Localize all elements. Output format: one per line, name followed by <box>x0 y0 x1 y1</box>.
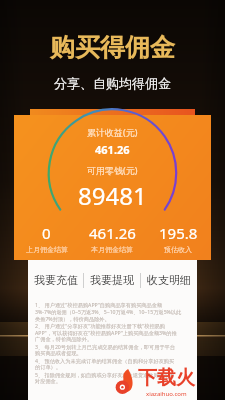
staticText: 461.26 <box>95 142 130 157</box>
staticText: 收支明细 <box>147 273 191 287</box>
staticText: 4、 预估收入为未完成订单的结算佣金（自购和分享好友购买 <box>35 357 175 364</box>
staticText: 购买得佣金 <box>50 32 175 63</box>
staticText: 购买商品或者提现。 <box>35 350 82 357</box>
staticText: 预估收入 <box>164 245 192 254</box>
staticText: 可用零钱(元) <box>87 164 138 176</box>
staticText: 分享、自购均得佣金 <box>54 75 171 91</box>
staticText: 0 <box>42 223 51 243</box>
staticText: 5、 扣除佣金规则，如自购或分享好友发生退货退款则会扣除 <box>35 371 175 378</box>
staticText: 本月佣金结算 <box>91 245 133 254</box>
staticText: 上月佣金结算 <box>26 245 68 254</box>
staticText: 2、 用户通过"分享好友"功能推荐好友注册下载"校控易购 <box>35 322 165 329</box>
staticText: 对应佣金。 <box>35 378 61 385</box>
staticText: 3、 每月20号划转上月已完成交易的结算佣金，即可用于平台 <box>35 343 175 350</box>
button[interactable]: 我要充值 <box>28 268 83 292</box>
button[interactable]: 461.26 <box>79 223 145 254</box>
staticText: xiazaihuo.com <box>146 390 187 398</box>
staticText: 广佣金，特价商品除外。 <box>35 336 93 343</box>
staticText: 的订单）。 <box>35 364 61 371</box>
staticText: 我要提现 <box>90 273 134 287</box>
staticText: 累计收益(元) <box>87 126 138 138</box>
staticText: 3%-7%的返佣（0~5万返3%、5~10万返4%、10~15万返5%以此 <box>35 308 182 315</box>
staticText: APP"，可以获得好友在"校控易购APP"上购买商品金额3%的推 <box>35 329 177 336</box>
button[interactable]: 195.8 <box>145 223 211 254</box>
staticText: 195.8 <box>159 223 198 243</box>
staticText: 89481 <box>78 179 147 212</box>
staticText: 461.26 <box>89 223 136 243</box>
staticText: 1、 用户通过"校控易购APP"自购商品享有购买商品金额 <box>35 301 163 308</box>
button[interactable]: 0 <box>14 223 79 254</box>
staticText: 下载火 <box>138 366 195 390</box>
button[interactable]: 我要提现 <box>84 268 140 292</box>
button[interactable]: 收支明细 <box>141 268 197 292</box>
staticText: 类推7%封顶），特价商品除外。 <box>35 315 110 322</box>
staticText: 我要充值 <box>34 273 78 287</box>
